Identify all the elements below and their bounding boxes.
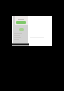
button[interactable] (19, 28, 24, 31)
button[interactable] (16, 21, 26, 24)
